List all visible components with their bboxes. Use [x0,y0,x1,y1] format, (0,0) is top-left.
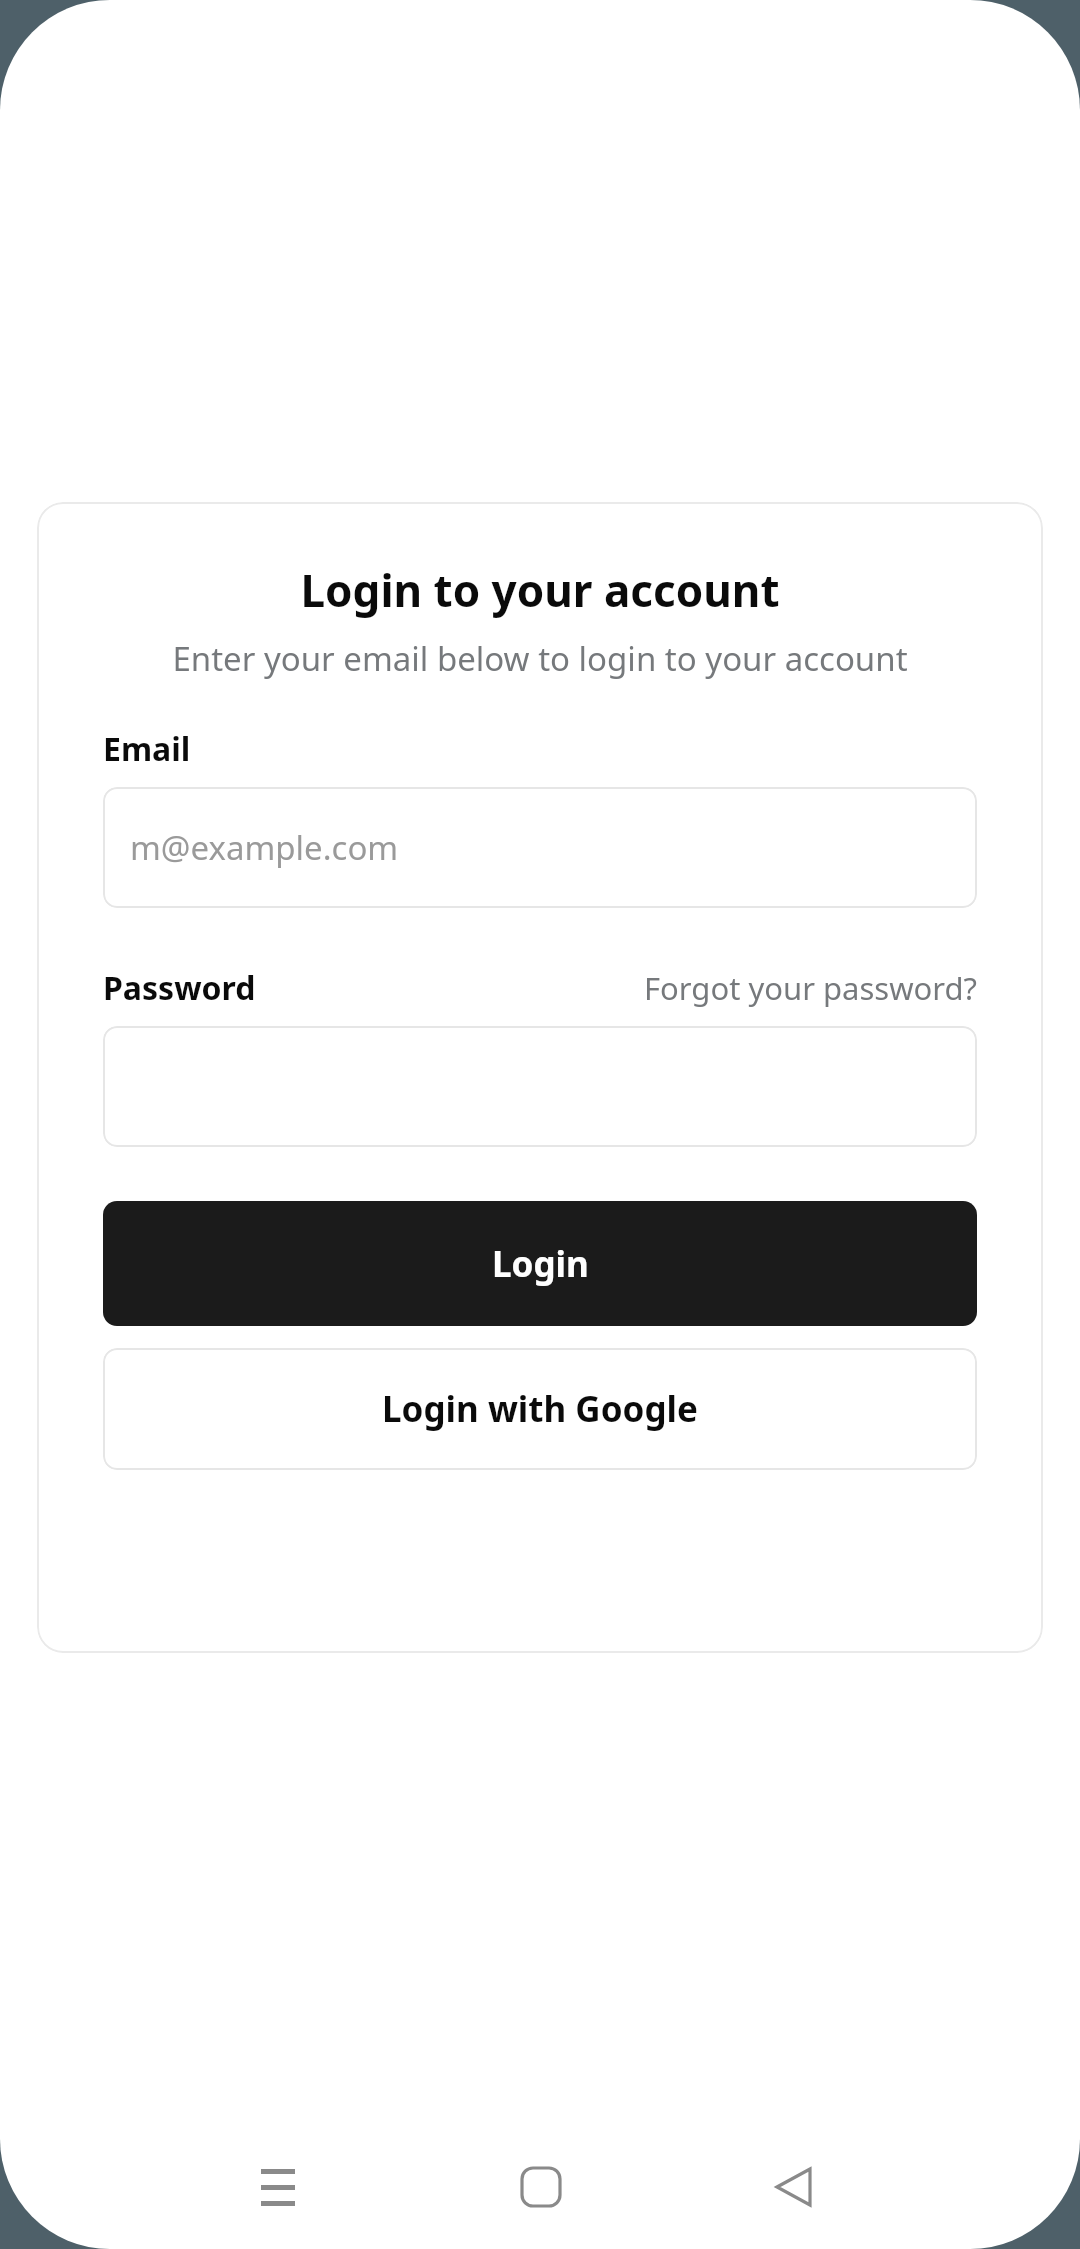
staticText: Enter your email below to login to your … [37,636,1043,681]
button[interactable]: Login with Google [103,1348,977,1470]
button[interactable]: Home [481,2127,601,2247]
staticText: Forgot your password? [644,967,977,1009]
button[interactable]: Recent apps [218,2127,338,2247]
button[interactable]: Back [736,2127,856,2247]
staticText: Login to your account [37,560,1043,620]
staticText: Email [103,727,191,771]
button[interactable]: Login [103,1201,977,1326]
staticText: Login with Google [382,1385,698,1433]
button[interactable]: Forgot your password? [644,967,977,1009]
staticText: Login [492,1240,589,1288]
staticText: m@example.com [130,825,399,870]
button[interactable]: m@example.com [103,787,977,908]
button[interactable] [103,1026,977,1147]
staticText: Password [103,966,256,1010]
